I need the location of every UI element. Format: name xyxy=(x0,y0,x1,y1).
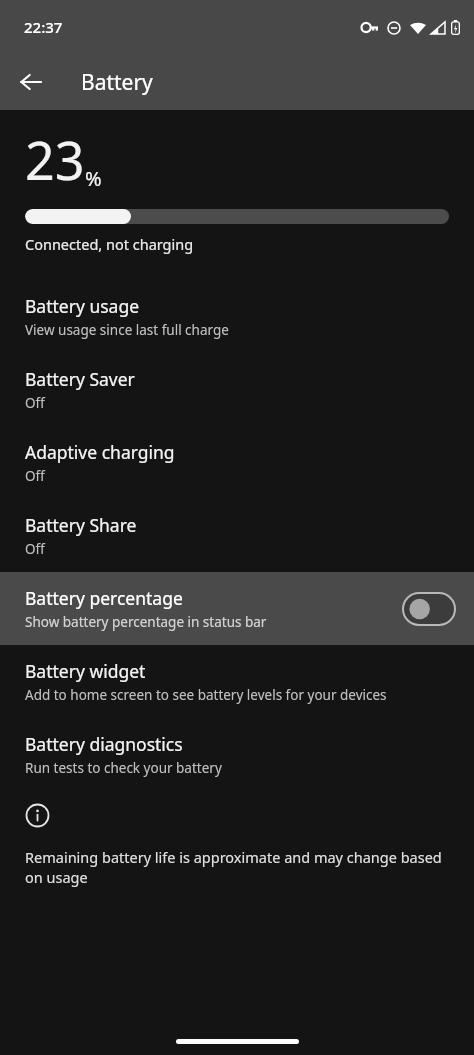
staticText: Battery usage xyxy=(25,294,140,318)
button[interactable]: Battery widget xyxy=(0,645,474,718)
staticText: View usage since last full charge xyxy=(25,321,229,339)
staticText: Battery diagnostics xyxy=(25,732,183,756)
button[interactable]: Battery diagnostics xyxy=(0,718,474,791)
button[interactable]: Adaptive charging xyxy=(0,426,474,499)
button[interactable]: Battery Saver xyxy=(0,353,474,426)
staticText: Show battery percentage in status bar xyxy=(25,613,267,631)
staticText: Battery widget xyxy=(25,659,146,683)
other: Battery percentage toggle xyxy=(402,592,456,626)
staticText: Remaining battery life is approximate an… xyxy=(25,847,449,888)
staticText: Adaptive charging xyxy=(25,440,175,464)
button[interactable]: Battery usage xyxy=(0,280,474,353)
staticText: Off xyxy=(25,540,45,558)
staticText: Battery Saver xyxy=(25,367,135,391)
staticText: % xyxy=(85,165,102,192)
button[interactable]: Back xyxy=(8,59,54,105)
button[interactable]: Battery Share xyxy=(0,499,474,572)
staticText: Run tests to check your battery xyxy=(25,759,222,777)
staticText: Connected, not charging xyxy=(25,234,194,254)
staticText: Battery xyxy=(81,68,153,97)
staticText: Battery percentage xyxy=(25,586,183,610)
staticText: Off xyxy=(25,394,45,412)
staticText: Add to home screen to see battery levels… xyxy=(25,686,387,704)
staticText: Off xyxy=(25,467,45,485)
staticText: Battery Share xyxy=(25,513,137,537)
staticText: 22:37 xyxy=(24,17,63,37)
staticText: 23 xyxy=(25,124,85,195)
button[interactable]: Battery percentage xyxy=(0,572,474,645)
